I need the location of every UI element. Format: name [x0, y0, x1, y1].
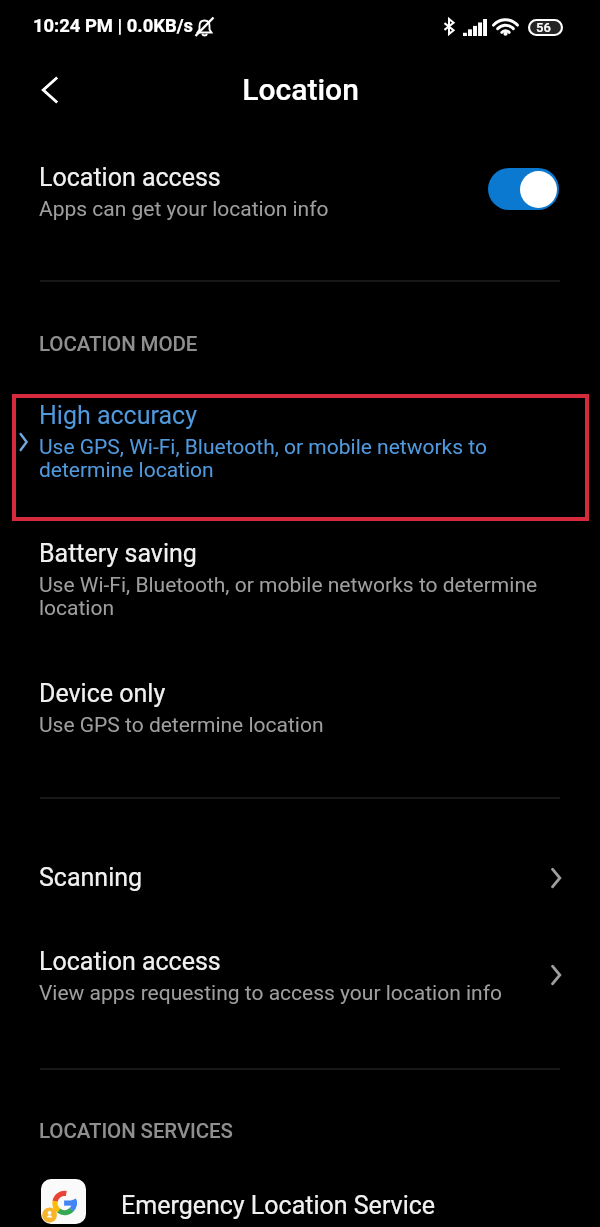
button[interactable]: Emergency Location Service: [0, 1170, 600, 1227]
button[interactable]: Location access switch: [488, 168, 559, 210]
staticText: Use GPS, Wi-Fi, Bluetooth, or mobile net…: [39, 435, 487, 482]
button[interactable]: High accuracy: [39, 401, 600, 482]
staticText: View apps requesting to access your loca…: [39, 981, 502, 1006]
button[interactable]: Location access: [0, 930, 600, 1026]
button[interactable]: Device only: [39, 679, 600, 738]
button[interactable]: Location access: [0, 150, 600, 242]
staticText: Device only: [39, 679, 166, 708]
staticText: LOCATION MODE: [39, 332, 198, 356]
staticText: Use GPS to determine location: [39, 713, 324, 738]
staticText: Battery saving: [39, 539, 197, 568]
button[interactable]: Battery saving: [39, 539, 600, 620]
staticText: Emergency Location Service: [121, 1191, 436, 1220]
staticText: Location access: [39, 163, 221, 192]
button[interactable]: Navigate up: [23, 63, 77, 117]
staticText: LOCATION SERVICES: [39, 1119, 233, 1143]
staticText: Location access: [39, 947, 221, 976]
staticText: Use Wi-Fi, Bluetooth, or mobile networks…: [39, 573, 538, 620]
staticText: Scanning: [39, 863, 143, 892]
staticText: High accuracy: [39, 401, 197, 430]
staticText: 10:24 PM | 0.0KB/s: [33, 15, 193, 37]
staticText: Location: [242, 72, 359, 107]
staticText: Apps can get your location info: [39, 197, 329, 222]
staticText: 56: [536, 20, 551, 35]
button[interactable]: Scanning: [0, 846, 600, 912]
